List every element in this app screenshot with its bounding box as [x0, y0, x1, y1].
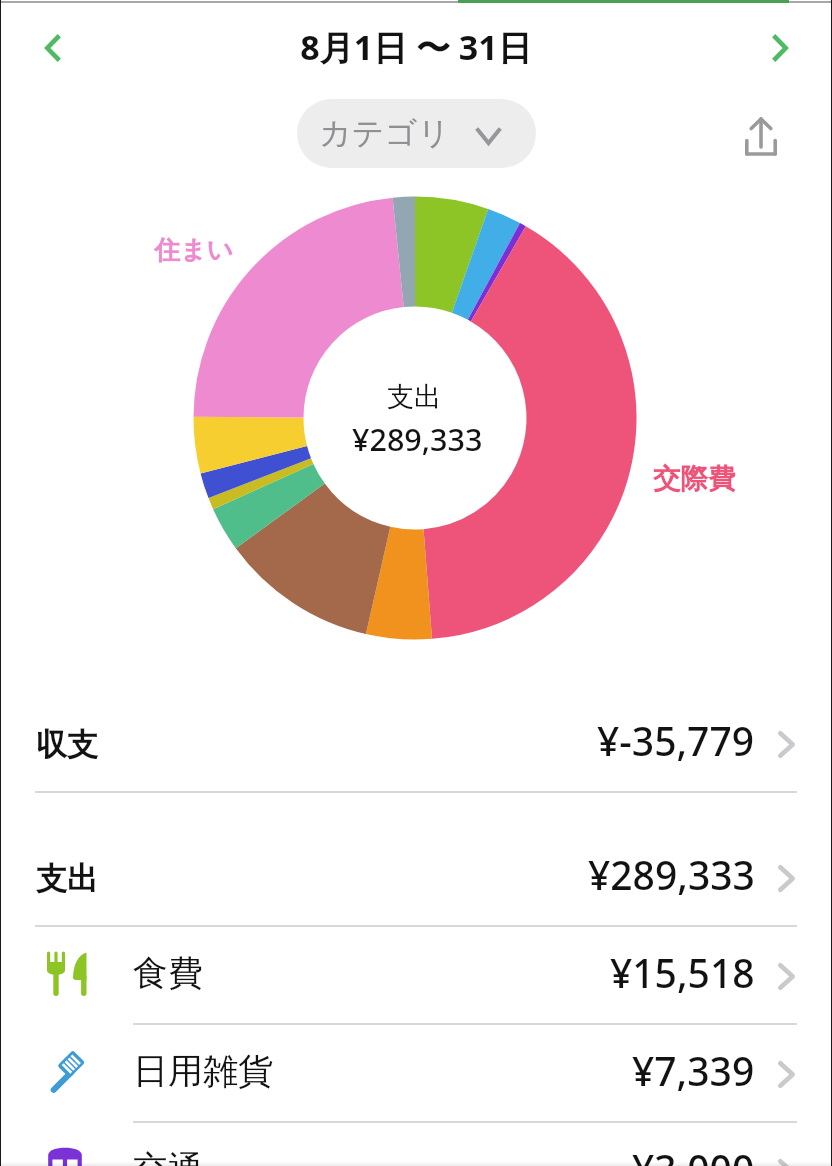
- button[interactable]: カテゴリ: [297, 99, 536, 168]
- staticText: 日用雑貨: [133, 1049, 273, 1093]
- staticText: ¥7,339: [632, 1044, 755, 1097]
- staticText: 8月1日 〜 31日: [300, 24, 532, 70]
- staticText: 支出: [387, 380, 441, 414]
- button[interactable]: 交通: [0, 1123, 832, 1166]
- staticText: 収支: [36, 725, 98, 764]
- staticText: ¥-35,779: [597, 714, 755, 767]
- button[interactable]: Previous month: [26, 22, 78, 74]
- staticText: カテゴリ: [319, 113, 450, 153]
- staticText: ¥3,000: [632, 1142, 755, 1166]
- button[interactable]: Next month: [754, 22, 806, 74]
- staticText: ¥289,333: [352, 418, 483, 460]
- staticText: 食費: [133, 951, 203, 995]
- button[interactable]: 支出: [0, 829, 832, 927]
- button[interactable]: 収支: [0, 695, 832, 793]
- staticText: ¥289,333: [588, 848, 755, 901]
- staticText: 住まい: [154, 234, 234, 267]
- button[interactable]: 食費: [0, 927, 832, 1025]
- staticText: 支出: [36, 859, 98, 898]
- button[interactable]: 日用雑貨: [0, 1025, 832, 1123]
- staticText: 交際費: [653, 462, 736, 497]
- staticText: 交通: [133, 1147, 203, 1166]
- button[interactable]: Share: [733, 108, 789, 164]
- staticText: ¥15,518: [610, 946, 755, 999]
